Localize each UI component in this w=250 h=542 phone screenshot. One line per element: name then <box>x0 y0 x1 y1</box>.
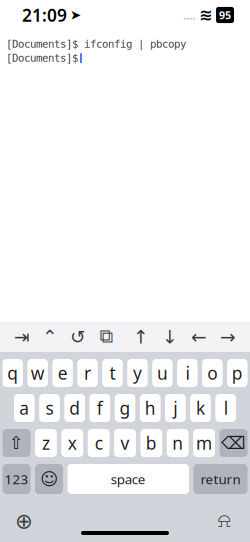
staticText: [Documents]$ ifconfig | pbcopy <box>6 38 186 50</box>
button[interactable]: b <box>140 429 162 457</box>
button[interactable]: h <box>140 394 160 422</box>
button[interactable]: 123 <box>2 464 30 494</box>
staticText: l <box>224 396 228 419</box>
button[interactable]: u <box>152 359 173 387</box>
button[interactable]: History <box>70 327 86 347</box>
staticText: s <box>45 396 53 419</box>
staticText: j <box>173 396 177 419</box>
staticText: ⍾ <box>217 511 230 531</box>
button[interactable]: k <box>190 394 211 422</box>
staticText: 95 <box>219 8 231 22</box>
staticText: f <box>97 396 103 419</box>
staticText: 21:09 <box>22 3 67 26</box>
staticText: ↑ <box>133 326 149 348</box>
button[interactable]: c <box>88 429 110 457</box>
staticText: y <box>133 361 142 384</box>
staticText: ⌫ <box>221 433 246 453</box>
button[interactable]: o <box>202 359 223 387</box>
button[interactable]: Change keyboard <box>12 509 36 533</box>
button[interactable]: Delete <box>219 429 247 457</box>
staticText: m <box>196 431 212 454</box>
staticText: c <box>95 431 103 454</box>
button[interactable]: d <box>64 394 85 422</box>
staticText: ⇧ <box>9 433 24 453</box>
button[interactable]: s <box>39 394 60 422</box>
button[interactable]: n <box>167 429 189 457</box>
button[interactable]: return <box>193 464 247 494</box>
button[interactable]: Right <box>220 327 236 347</box>
button[interactable]: r <box>77 359 98 387</box>
button[interactable]: m <box>193 429 215 457</box>
staticText: x <box>68 431 77 454</box>
button[interactable]: p <box>227 359 248 387</box>
button[interactable]: f <box>89 394 110 422</box>
button[interactable]: space <box>67 464 189 494</box>
staticText: space <box>111 470 146 488</box>
staticText: p <box>232 361 243 384</box>
staticText: b <box>146 431 157 454</box>
staticText: k <box>196 396 205 419</box>
button[interactable]: Shift <box>2 429 30 457</box>
button[interactable]: Down <box>162 327 178 347</box>
staticText: w <box>31 361 45 384</box>
staticText: n <box>172 431 183 454</box>
staticText: ➤ <box>70 7 81 22</box>
button[interactable]: v <box>114 429 136 457</box>
button[interactable]: q <box>2 359 23 387</box>
button[interactable]: a <box>14 394 35 422</box>
staticText: u <box>157 361 168 384</box>
staticText: ☺ <box>40 469 58 489</box>
staticText: ↺ <box>70 326 86 348</box>
button[interactable]: Paste <box>98 327 114 347</box>
staticText: q <box>7 361 18 384</box>
staticText: e <box>58 361 68 384</box>
staticText: v <box>120 431 129 454</box>
button[interactable]: Up <box>133 327 149 347</box>
staticText: d <box>69 396 80 419</box>
staticText: h <box>145 396 156 419</box>
button[interactable]: i <box>177 359 198 387</box>
staticText: g <box>119 396 130 419</box>
staticText: ⊕ <box>15 509 33 533</box>
button[interactable]: Left <box>191 327 207 347</box>
staticText: z <box>42 431 50 454</box>
staticText: ⌃ <box>42 326 58 348</box>
button[interactable]: z <box>35 429 57 457</box>
staticText: ← <box>191 326 207 348</box>
staticText: o <box>207 361 217 384</box>
staticText: t <box>109 361 115 384</box>
staticText: a <box>19 396 29 419</box>
button[interactable]: Tab <box>14 327 30 347</box>
staticText: [Documents]$ <box>6 52 78 64</box>
button[interactable]: x <box>61 429 83 457</box>
button[interactable]: l <box>215 394 236 422</box>
staticText: ⧉ <box>99 328 112 346</box>
staticText: return <box>200 470 240 488</box>
button[interactable]: w <box>27 359 48 387</box>
button[interactable]: g <box>115 394 135 422</box>
button[interactable]: Dictation <box>212 509 236 533</box>
button[interactable]: t <box>102 359 123 387</box>
staticText: ↓ <box>162 326 178 348</box>
button[interactable]: y <box>127 359 148 387</box>
button[interactable]: j <box>165 394 186 422</box>
button[interactable]: e <box>52 359 73 387</box>
staticText: ≋ <box>199 6 212 24</box>
staticText: 123 <box>4 470 28 488</box>
staticText: .... <box>183 7 195 23</box>
button[interactable]: Control <box>42 327 58 347</box>
staticText: r <box>84 361 91 384</box>
staticText: i <box>185 361 189 384</box>
staticText: ⇥ <box>14 326 30 348</box>
button[interactable]: Emoji <box>35 464 63 494</box>
staticText: → <box>220 326 236 348</box>
